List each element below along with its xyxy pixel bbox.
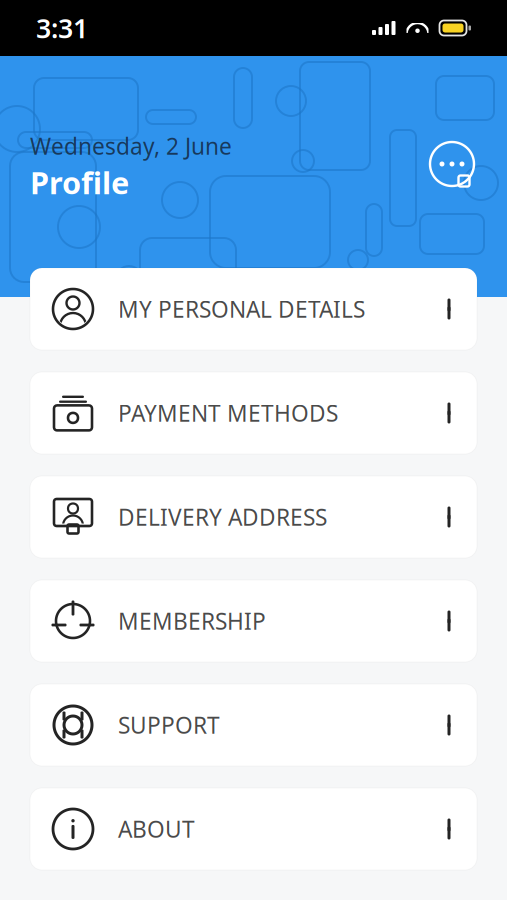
staticText: Profile xyxy=(30,162,129,203)
staticText: PAYMENT METHODS xyxy=(118,398,338,428)
staticText: DELIVERY ADDRESS xyxy=(118,502,327,532)
button[interactable]: ABOUT xyxy=(30,788,477,870)
button[interactable]: DELIVERY ADDRESS xyxy=(30,476,477,558)
staticText: Wednesday, 2 June xyxy=(30,131,232,161)
staticText: MEMBERSHIP xyxy=(118,606,266,636)
button[interactable]: Messages xyxy=(427,139,477,189)
button[interactable]: SUPPORT xyxy=(30,684,477,766)
button[interactable]: MEMBERSHIP xyxy=(30,580,477,662)
staticText: MY PERSONAL DETAILS xyxy=(118,294,365,324)
staticText: SUPPORT xyxy=(118,710,220,740)
staticText: ABOUT xyxy=(118,814,195,844)
staticText: 3:31 xyxy=(36,10,88,46)
button[interactable]: PAYMENT METHODS xyxy=(30,372,477,454)
button[interactable]: MY PERSONAL DETAILS xyxy=(30,268,477,350)
